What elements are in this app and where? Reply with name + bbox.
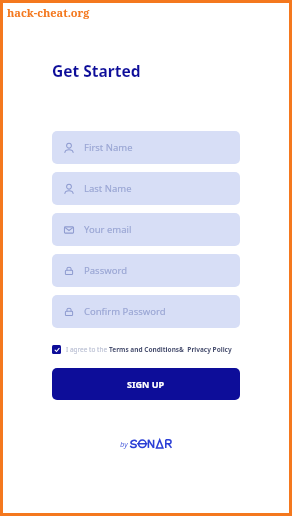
- button[interactable]: Your email: [52, 213, 240, 246]
- button[interactable]: Password: [52, 254, 240, 287]
- staticText: First Name: [84, 141, 133, 154]
- staticText: by: [120, 439, 130, 449]
- other: Agree to terms checkbox: [52, 345, 61, 354]
- staticText: Terms and Conditions& Privacy Policy: [109, 345, 232, 354]
- button[interactable]: SIGN UP: [52, 368, 240, 400]
- staticText: Your email: [84, 223, 132, 236]
- button[interactable]: Last Name: [52, 172, 240, 205]
- staticText: hack-cheat.org: [7, 5, 90, 20]
- staticText: Last Name: [84, 182, 132, 195]
- staticText: I agree to the: [66, 345, 109, 354]
- staticText: Password: [84, 264, 127, 277]
- button[interactable]: Agree to terms checkbox: [52, 345, 240, 354]
- button[interactable]: First Name: [52, 131, 240, 164]
- staticText: Confirm Password: [84, 305, 166, 318]
- button[interactable]: Confirm Password: [52, 295, 240, 328]
- staticText: SIGN UP: [127, 378, 165, 390]
- staticText: Get Started: [52, 60, 141, 81]
